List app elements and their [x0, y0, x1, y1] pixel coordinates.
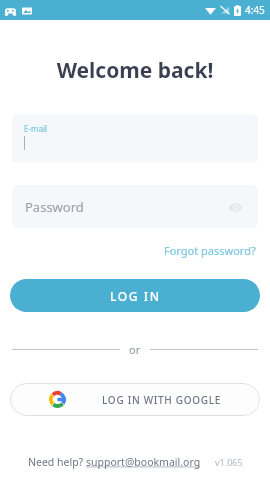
staticText: or: [129, 342, 141, 357]
staticText: Forgot password?: [164, 243, 256, 258]
staticText: LOG IN WITH GOOGLE: [102, 393, 222, 407]
staticText: Password: [25, 198, 84, 216]
button[interactable]: Show password: [222, 194, 248, 220]
staticText: Welcome back!: [0, 56, 270, 85]
staticText: LOG IN: [110, 288, 161, 304]
button[interactable]: Forgot password?: [162, 240, 258, 261]
staticText: 4:45: [245, 3, 265, 17]
staticText: support@bookmail.org: [86, 455, 201, 469]
staticText: Need help?: [28, 455, 86, 469]
button[interactable]: E-mail: [12, 114, 258, 162]
button[interactable]: support@bookmail.org: [86, 455, 201, 469]
button[interactable]: LOG IN WITH GOOGLE: [10, 383, 260, 416]
button[interactable]: Password: [12, 185, 258, 228]
staticText: E-mail: [24, 123, 48, 134]
staticText: v1.065: [215, 456, 243, 468]
button[interactable]: LOG IN: [10, 279, 260, 312]
